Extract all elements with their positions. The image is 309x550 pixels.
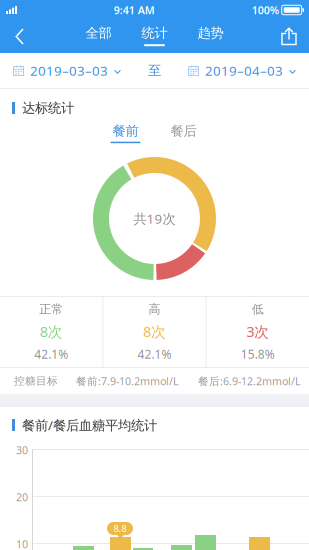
staticText: 餐前 <box>112 123 138 139</box>
staticText: 趋势 <box>197 25 223 41</box>
button[interactable]: 趋势 <box>182 20 238 53</box>
button[interactable]: Share <box>269 20 309 53</box>
button[interactable]: 全部 <box>70 20 126 53</box>
staticText: 统计 <box>141 25 167 41</box>
staticText: 8.8 <box>113 522 126 535</box>
staticText: 3次 <box>246 322 269 341</box>
button[interactable]: 2019–04–03 <box>188 53 296 88</box>
staticText: 42.1% <box>34 346 68 362</box>
staticText: 至 <box>148 62 161 79</box>
staticText: 2019–04–03 <box>205 62 283 79</box>
staticText: 餐后:6.9-12.2mmol/L <box>198 374 301 388</box>
staticText: 低 <box>252 302 264 317</box>
button[interactable]: 餐后 <box>158 123 208 143</box>
staticText: 共19次 <box>133 210 175 227</box>
staticText: 餐前:7.9-10.2mmol/L <box>76 374 179 388</box>
staticText: 9:41 AM <box>114 3 155 17</box>
staticText: 2019–03–03 <box>30 62 108 79</box>
button[interactable]: 餐前 <box>100 123 150 143</box>
staticText: 控糖目标 <box>14 374 58 387</box>
staticText: 达标统计 <box>22 100 74 116</box>
staticText: 15.8% <box>241 346 275 362</box>
staticText: 42.1% <box>137 346 171 362</box>
staticText: 餐前/餐后血糖平均统计 <box>22 416 157 434</box>
staticText: 10 <box>16 537 28 550</box>
staticText: 高 <box>148 302 160 317</box>
button[interactable]: Back <box>0 20 40 53</box>
staticText: 20 <box>16 490 28 504</box>
staticText: 30 <box>16 443 28 457</box>
staticText: 100% <box>252 3 279 17</box>
button[interactable]: 2019–03–03 <box>13 53 121 88</box>
staticText: 正常 <box>39 302 63 317</box>
staticText: 全部 <box>85 25 111 41</box>
staticText: 餐后 <box>170 123 196 139</box>
staticText: 8次 <box>40 322 63 341</box>
button[interactable]: 统计 <box>126 20 182 53</box>
staticText: 8次 <box>143 322 166 341</box>
